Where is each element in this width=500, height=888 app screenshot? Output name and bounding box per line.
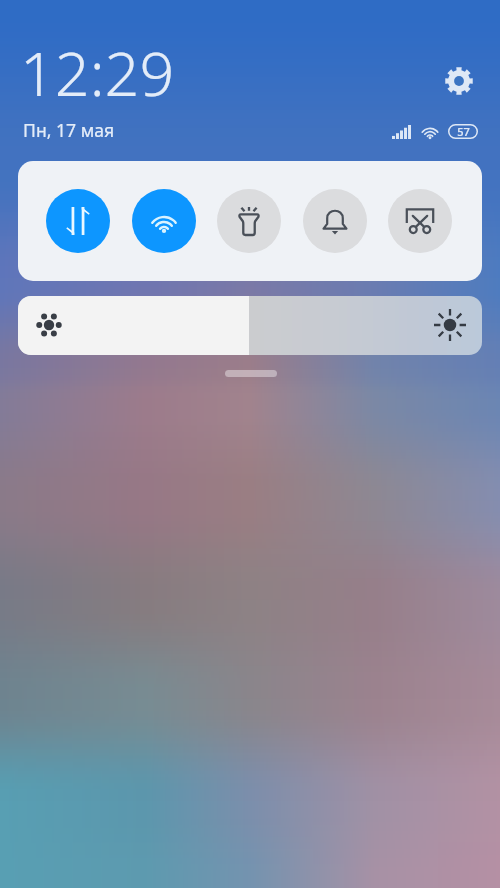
staticText: 57 xyxy=(457,124,470,139)
button[interactable] xyxy=(18,296,482,355)
button[interactable]: Wi-Fi xyxy=(132,189,196,253)
button[interactable]: Do not disturb xyxy=(303,189,367,253)
staticText: 12:29 xyxy=(20,31,175,114)
button[interactable]: Mobile data xyxy=(46,189,110,253)
button[interactable]: Expand quick settings xyxy=(225,370,277,377)
button[interactable]: Screenshot xyxy=(388,189,452,253)
button[interactable]: Flashlight xyxy=(217,189,281,253)
button[interactable]: Settings xyxy=(442,64,475,97)
staticText: Пн, 17 мая xyxy=(23,118,115,142)
